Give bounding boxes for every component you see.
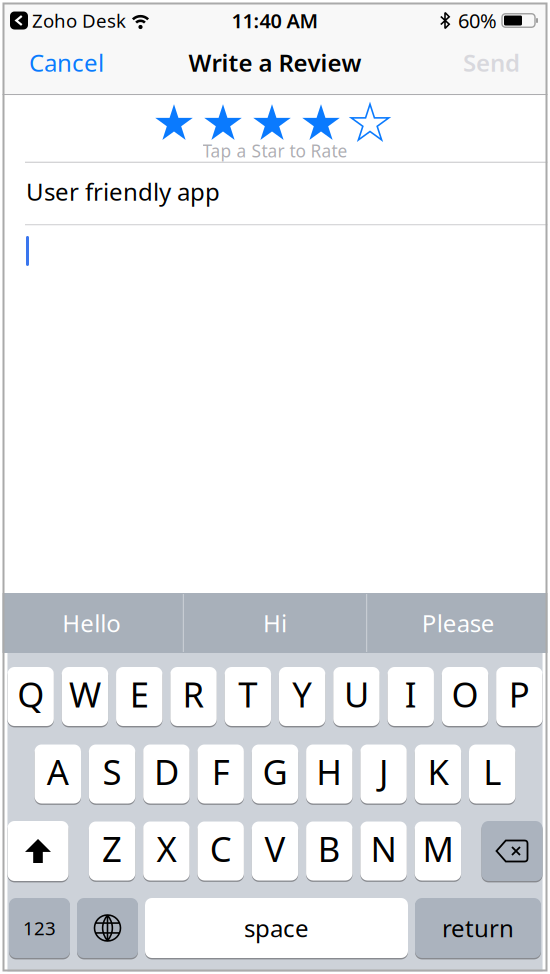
staticText: F	[212, 748, 230, 794]
staticText: X	[156, 825, 176, 871]
button[interactable]: A	[35, 744, 81, 803]
button[interactable]: Numbers	[9, 898, 70, 958]
staticText: Hello	[62, 607, 121, 639]
button[interactable]: R	[170, 667, 217, 726]
button[interactable]: N	[360, 821, 407, 880]
button[interactable]: Hi	[184, 593, 366, 653]
button[interactable]: D	[143, 744, 190, 803]
staticText: Zoho Desk	[32, 8, 126, 33]
staticText: L	[483, 748, 501, 794]
staticText: Cancel	[29, 47, 104, 78]
button[interactable]: Star 5	[350, 104, 390, 141]
button[interactable]: Z	[89, 821, 135, 880]
staticText: J	[379, 748, 388, 794]
staticText: N	[371, 825, 397, 871]
button[interactable]: return	[415, 898, 541, 958]
staticText: U	[344, 671, 369, 717]
staticText: S	[103, 748, 122, 794]
button[interactable]: L	[469, 744, 515, 803]
button[interactable]: Next keyboard	[77, 898, 138, 958]
button[interactable]: Hello	[1, 593, 183, 653]
staticText: Y	[292, 671, 312, 717]
button[interactable]: K	[415, 744, 461, 803]
button[interactable]: V	[252, 821, 298, 880]
staticText: A	[47, 748, 69, 794]
button[interactable]: Please	[367, 593, 549, 653]
staticText: R	[183, 671, 205, 717]
button[interactable]: Star 3	[252, 104, 292, 141]
button[interactable]: space	[145, 898, 408, 958]
button[interactable]: G	[252, 744, 298, 803]
staticText: Tap a Star to Rate	[202, 139, 347, 162]
button[interactable]: P	[496, 667, 543, 726]
staticText: Send	[463, 47, 520, 78]
staticText: E	[130, 671, 149, 717]
button[interactable]: Star 1	[154, 104, 194, 141]
button[interactable]: U	[333, 667, 380, 726]
staticText: Please	[422, 607, 495, 639]
staticText: K	[427, 748, 448, 794]
staticText: Z	[102, 825, 122, 871]
staticText: O	[452, 671, 479, 717]
staticText: W	[69, 671, 101, 717]
button[interactable]: T	[225, 667, 271, 726]
staticText: G	[262, 748, 287, 794]
button[interactable]: M	[415, 821, 461, 880]
staticText: return	[442, 912, 514, 944]
staticText: I	[405, 671, 417, 717]
staticText: 11:40 AM	[231, 7, 318, 34]
button[interactable]: Shift	[7, 821, 68, 881]
button[interactable]: C	[197, 821, 244, 880]
staticText: 60%	[458, 7, 497, 34]
staticText: H	[316, 748, 342, 794]
button[interactable]: Star 4	[301, 104, 341, 141]
button[interactable]: B	[306, 821, 352, 880]
staticText: D	[154, 748, 179, 794]
button[interactable]: H	[306, 744, 352, 803]
button[interactable]: Y	[279, 667, 325, 726]
staticText: B	[318, 825, 341, 871]
button[interactable]: Star 2	[203, 104, 243, 141]
button[interactable]: Back to Zoho Desk	[10, 8, 126, 33]
staticText: space	[244, 912, 309, 944]
button[interactable]: Delete	[481, 821, 542, 881]
staticText: 123	[23, 916, 56, 940]
staticText: Q	[17, 671, 44, 717]
button[interactable]: F	[197, 744, 244, 803]
button[interactable]: J	[360, 744, 407, 803]
staticText: Write a Review	[188, 47, 361, 78]
button[interactable]: O	[442, 667, 488, 726]
button[interactable]: Cancel	[29, 47, 104, 78]
button[interactable]: I	[388, 667, 434, 726]
staticText: Hi	[263, 607, 287, 639]
button[interactable]: X	[143, 821, 190, 880]
button[interactable]: E	[116, 667, 162, 726]
button[interactable]: W	[62, 667, 108, 726]
staticText: M	[422, 825, 453, 871]
button[interactable]: S	[89, 744, 135, 803]
staticText: User friendly app	[26, 175, 220, 207]
staticText: P	[509, 671, 530, 717]
button[interactable]: Send	[463, 47, 520, 78]
staticText: T	[238, 671, 257, 717]
staticText: V	[264, 825, 285, 871]
button[interactable]: Q	[7, 667, 54, 726]
staticText: C	[210, 825, 232, 871]
